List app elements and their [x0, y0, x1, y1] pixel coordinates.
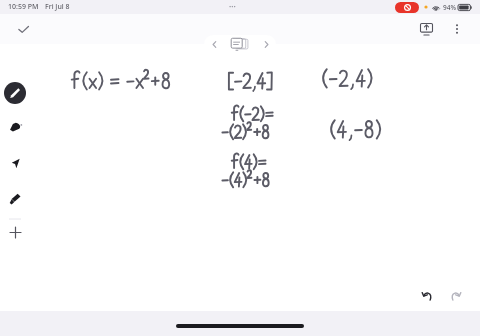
- button[interactable]: Undo: [415, 283, 439, 307]
- staticText: 94%: [443, 3, 456, 12]
- staticText: Fri Jul 8: [45, 2, 70, 12]
- button[interactable]: Next page: [256, 35, 276, 54]
- button[interactable]: Add: [2, 224, 28, 240]
- button[interactable]: Done: [12, 18, 34, 40]
- staticText: 10:59 PM: [8, 2, 39, 12]
- button[interactable]: Previous page: [204, 35, 224, 54]
- button[interactable]: Redo: [443, 283, 467, 307]
- button[interactable]: Select: [2, 150, 28, 176]
- button[interactable]: Marker: [2, 114, 28, 140]
- staticText: •••: [229, 3, 236, 11]
- button[interactable]: Present: [414, 17, 438, 41]
- button[interactable]: More options: [446, 18, 468, 40]
- button[interactable]: Highlighter: [2, 186, 28, 212]
- button[interactable]: Pen: [2, 80, 28, 106]
- button[interactable]: Page navigation: [204, 35, 276, 54]
